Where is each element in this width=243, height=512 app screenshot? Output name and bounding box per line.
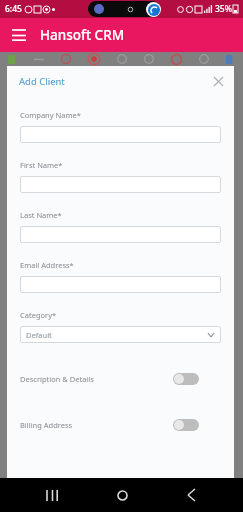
staticText: Last Name* — [20, 210, 62, 220]
staticText: First Name* — [20, 160, 63, 170]
staticText: Hansoft CRM — [40, 26, 125, 44]
staticText: Description & Details — [20, 374, 94, 384]
button[interactable]: Back — [174, 478, 208, 512]
button[interactable]: Description & Details — [20, 369, 221, 389]
staticText: Billing Address — [20, 420, 73, 430]
button[interactable]: Close — [208, 71, 228, 91]
button[interactable]: Open navigation menu — [6, 22, 32, 48]
staticText: Add Client — [19, 75, 65, 88]
button[interactable] — [20, 176, 221, 193]
button[interactable]: Home — [105, 478, 139, 512]
button[interactable] — [20, 126, 221, 143]
button[interactable] — [20, 276, 221, 293]
button[interactable] — [20, 226, 221, 243]
staticText: Category* — [20, 310, 57, 320]
button[interactable]: Default — [20, 326, 221, 343]
staticText: Default — [26, 330, 52, 340]
staticText: 6:45 — [5, 3, 22, 15]
button[interactable]: Recent apps — [35, 478, 69, 512]
button[interactable]: Billing Address — [20, 415, 221, 435]
staticText: Email Address* — [20, 260, 74, 270]
staticText: 35% — [215, 3, 232, 15]
staticText: Company Name* — [20, 110, 81, 120]
